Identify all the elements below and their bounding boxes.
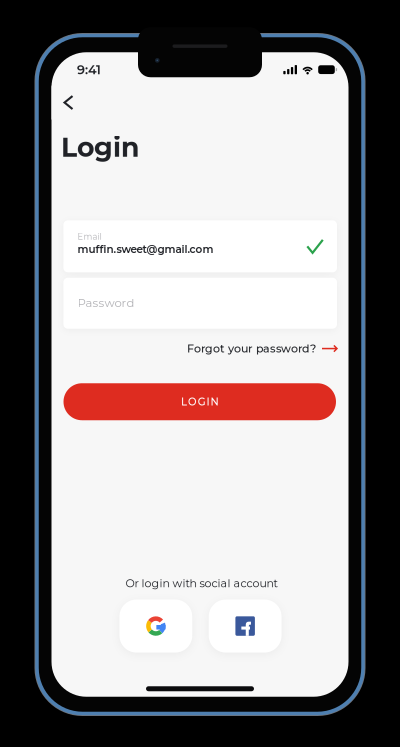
staticText: Forgot your password? bbox=[187, 342, 316, 355]
staticText: LOGIN bbox=[181, 396, 218, 408]
staticText: muffin.sweet@gmail.com bbox=[78, 243, 214, 256]
button[interactable]: Forgot your password? bbox=[177, 337, 337, 361]
staticText: Password bbox=[78, 296, 135, 310]
staticText: Email bbox=[78, 232, 102, 242]
button[interactable]: Continue with Facebook bbox=[209, 599, 282, 652]
staticText: Or login with social account bbox=[125, 576, 277, 590]
staticText: Login bbox=[61, 131, 139, 163]
button[interactable]: Back bbox=[51, 86, 85, 120]
staticText: 9:41 bbox=[77, 62, 101, 77]
button[interactable]: Continue with Google bbox=[119, 599, 192, 652]
button[interactable]: LOGIN bbox=[63, 383, 336, 420]
